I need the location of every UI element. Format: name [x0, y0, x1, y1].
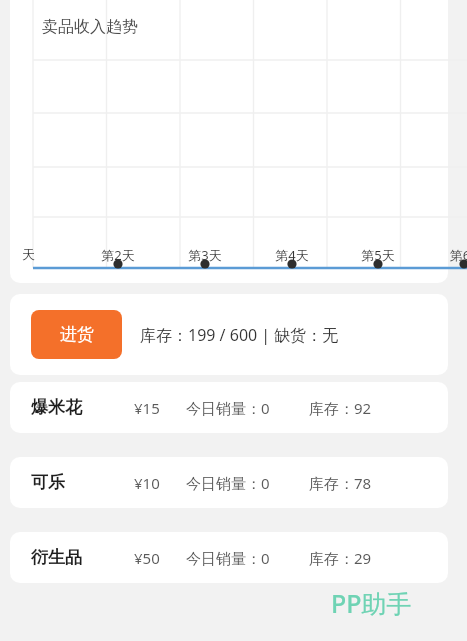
staticText: 今日销量：0 [186, 473, 270, 493]
button[interactable]: 爆米花 [10, 382, 448, 433]
button[interactable]: 衍生品 [10, 532, 448, 583]
staticText: 第5天 [356, 246, 400, 264]
staticText: 库存：29 [309, 548, 372, 568]
staticText: ¥10 [134, 473, 160, 493]
staticText: 库存：92 [309, 398, 372, 418]
staticText: 库存：78 [309, 473, 372, 493]
button[interactable]: 进货 [31, 310, 122, 359]
staticText: ¥15 [134, 398, 160, 418]
button[interactable]: 卖品收入趋势图表 [10, 0, 448, 283]
staticText: 可乐 [31, 472, 65, 493]
button[interactable]: 可乐 [10, 457, 448, 508]
staticText: 第2天 [96, 246, 140, 264]
staticText: 今日销量：0 [186, 398, 270, 418]
staticText: 第3天 [183, 246, 227, 264]
staticText: 天 [22, 246, 35, 262]
staticText: ¥50 [134, 548, 160, 568]
staticText: 第4天 [270, 246, 314, 264]
staticText: 第6 [438, 246, 467, 264]
staticText: 爆米花 [31, 397, 82, 418]
staticText: 进货 [60, 324, 94, 345]
staticText: 库存：199 / 600 | 缺货：无 [140, 324, 339, 346]
staticText: 衍生品 [31, 547, 82, 568]
staticText: 卖品收入趋势 [42, 17, 138, 37]
staticText: 今日销量：0 [186, 548, 270, 568]
staticText: PP助手 [331, 586, 412, 620]
